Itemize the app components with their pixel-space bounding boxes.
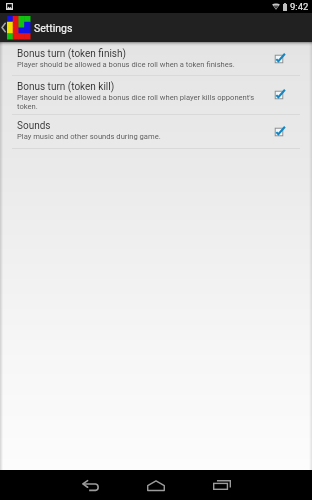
staticText: Settings <box>34 22 73 34</box>
staticText: Bonus turn (token finish) <box>17 48 127 60</box>
button[interactable]: Bonus turn (token kill) <box>0 76 312 114</box>
staticText: Player should be allowed a bonus dice ro… <box>17 93 261 111</box>
button[interactable]: Toggle setting <box>272 125 286 139</box>
staticText: Sounds <box>17 120 51 132</box>
button[interactable]: Navigate up <box>0 13 312 42</box>
button[interactable]: Recent apps <box>204 470 240 500</box>
button[interactable]: Toggle setting <box>272 88 286 102</box>
staticText: 9:42 <box>290 1 309 12</box>
staticText: Bonus turn (token kill) <box>17 81 115 93</box>
button[interactable]: Sounds <box>0 115 312 148</box>
button[interactable]: Toggle setting <box>272 52 286 66</box>
button[interactable]: Home <box>138 470 174 500</box>
button[interactable]: Back <box>72 470 108 500</box>
staticText: Play music and other sounds during game. <box>17 132 161 141</box>
staticText: Player should be allowed a bonus dice ro… <box>17 60 235 69</box>
button[interactable]: Bonus turn (token finish) <box>0 43 312 75</box>
